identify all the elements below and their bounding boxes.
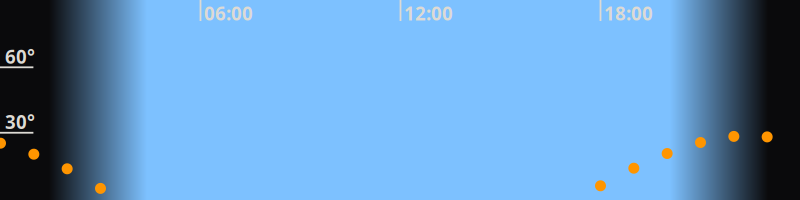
staticText: 06:00 (204, 1, 253, 26)
staticText: 60° (5, 44, 35, 69)
staticText: 30° (5, 109, 35, 134)
staticText: 18:00 (604, 1, 653, 26)
staticText: 12:00 (404, 1, 453, 26)
